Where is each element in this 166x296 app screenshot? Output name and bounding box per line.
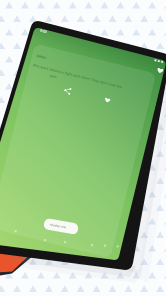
button[interactable] (152, 60, 166, 74)
button[interactable] (44, 215, 82, 231)
button[interactable] (100, 92, 114, 106)
button[interactable] (60, 84, 74, 98)
